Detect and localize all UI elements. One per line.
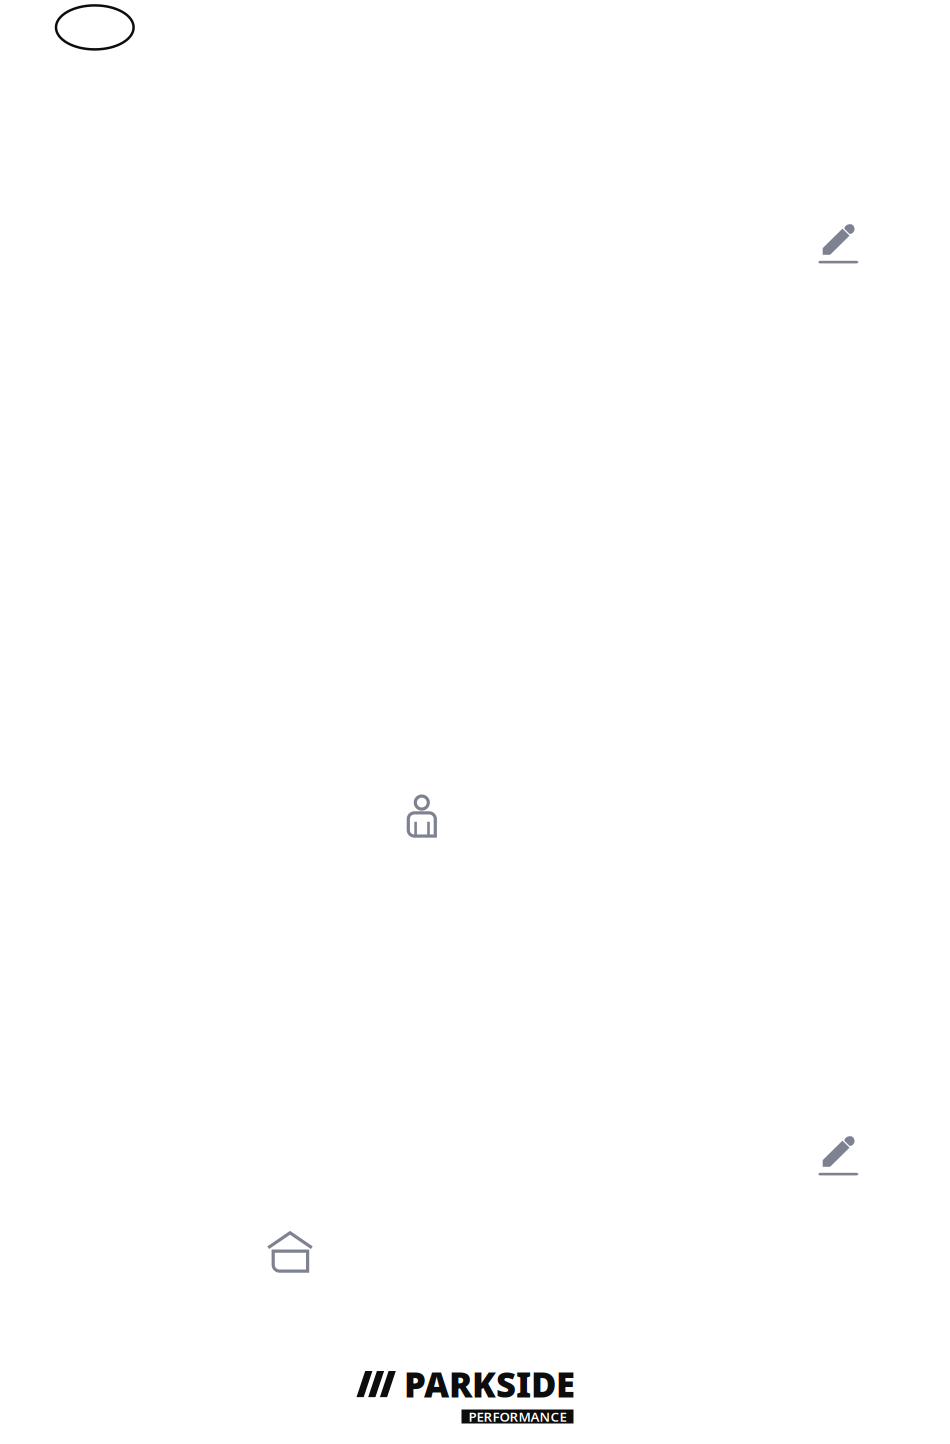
staticText: PARKSIDE (404, 1361, 575, 1407)
staticText: PERFORMANCE (468, 1408, 566, 1425)
button[interactable]: Edit personal details (818, 220, 860, 265)
button[interactable]: Change region (55, 4, 135, 51)
button[interactable]: Edit address (818, 1132, 860, 1177)
